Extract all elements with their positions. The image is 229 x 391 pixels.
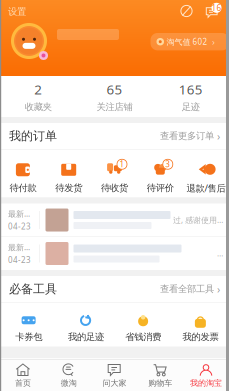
staticText: 首页: [15, 378, 31, 388]
staticText: 最新物流: [8, 208, 36, 219]
staticText: 查看更多订单: [160, 130, 214, 142]
button[interactable]: 我的发票: [172, 302, 229, 347]
staticText: 待收货: [101, 182, 128, 194]
button[interactable]: 3: [137, 148, 183, 199]
staticText: 淘气值 602: [166, 36, 207, 47]
button[interactable]: 2: [0, 72, 76, 121]
button[interactable]: 165: [153, 72, 229, 121]
staticText: 3: [165, 159, 170, 170]
button[interactable]: 设置: [0, 0, 26, 17]
button[interactable]: 待发货: [46, 148, 92, 199]
button[interactable]: 最新物流: [0, 237, 229, 270]
staticText: 我的订单: [9, 129, 57, 143]
staticText: 省钱消费: [125, 331, 161, 343]
staticText: 2: [34, 80, 42, 98]
staticText: 04-23: [8, 221, 31, 232]
button[interactable]: 卡券包: [0, 302, 57, 347]
staticText: 收藏夹: [25, 101, 52, 113]
button[interactable]: Profile photo: [10, 22, 48, 60]
button[interactable]: 省钱消费: [114, 302, 172, 347]
staticText: 16: [211, 2, 221, 13]
staticText: 关注店铺: [96, 101, 132, 113]
staticText: 购物车: [148, 378, 172, 388]
staticText: 设置: [8, 6, 26, 17]
staticText: …: [217, 248, 223, 259]
staticText: 必备工具: [9, 282, 57, 296]
staticText: 问大家: [102, 378, 126, 388]
button[interactable]: 首页: [0, 363, 46, 388]
staticText: 待付款: [9, 182, 36, 194]
staticText: 退款/售后: [187, 182, 226, 194]
staticText: 最新物流: [8, 242, 36, 253]
button[interactable]: 必备工具: [0, 276, 229, 302]
staticText: 我的发票: [182, 331, 218, 343]
button[interactable]: 问大家: [92, 363, 137, 388]
button[interactable]: 淘气值 602: [150, 33, 229, 50]
staticText: 待发货: [55, 182, 82, 194]
staticText: 卡券包: [15, 331, 42, 343]
button[interactable]: 退款/售后: [183, 148, 229, 199]
staticText: 微淘: [61, 378, 77, 388]
staticText: 过, 感谢使用…: [173, 215, 223, 225]
button[interactable]: Design: [180, 4, 193, 17]
staticText: ›: [214, 129, 220, 143]
staticText: 165: [179, 80, 203, 98]
button[interactable]: 我的淘宝: [183, 363, 229, 388]
button[interactable]: 我的足迹: [57, 302, 114, 347]
staticText: 我的足迹: [68, 331, 104, 343]
staticText: ›: [212, 35, 215, 48]
button[interactable]: 最新物流: [0, 203, 229, 236]
button[interactable]: 1: [92, 148, 137, 199]
button[interactable]: 购物车: [137, 363, 183, 388]
staticText: 查看全部工具: [160, 283, 214, 295]
button[interactable]: 65: [76, 72, 153, 121]
button[interactable]: 微淘: [46, 363, 92, 388]
button[interactable]: Messages: [204, 4, 220, 18]
staticText: 04-23: [8, 254, 31, 265]
staticText: ›: [214, 282, 220, 296]
staticText: 65: [106, 80, 122, 98]
staticText: 足迹: [182, 101, 200, 113]
staticText: 待评价: [147, 182, 174, 194]
button[interactable]: 我的订单: [0, 123, 229, 149]
staticText: 我的淘宝: [190, 378, 222, 388]
button[interactable]: 待付款: [0, 148, 46, 199]
staticText: 1: [119, 159, 124, 170]
